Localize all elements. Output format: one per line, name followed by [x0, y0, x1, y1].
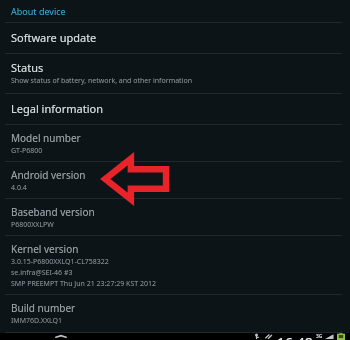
staticText: Show status of battery, network, and oth…: [11, 76, 193, 86]
button[interactable]: Software update: [0, 23, 350, 53]
staticText: Kernel version: [11, 242, 79, 256]
staticText: Legal information: [11, 101, 103, 116]
button[interactable]: Android version: [0, 162, 350, 198]
button[interactable]: Kernel version: [0, 236, 350, 294]
staticText: 3G: [316, 333, 323, 340]
staticText: Status: [11, 60, 44, 75]
staticText: se.infra@SEI-46 #3: [11, 268, 73, 278]
button[interactable]: Status icons: [252, 333, 345, 340]
button[interactable]: Legal information: [0, 94, 350, 124]
staticText: About device: [11, 5, 66, 17]
staticText: Software update: [11, 30, 97, 45]
staticText: Android version: [11, 168, 86, 182]
button[interactable]: Build number: [0, 295, 350, 332]
staticText: 3.0.15-P6800XXLQ1-CL758322: [11, 257, 109, 267]
staticText: Build number: [11, 301, 76, 315]
staticText: 16:48: [277, 333, 313, 340]
button[interactable]: Status: [0, 54, 350, 93]
staticText: P6800XXLPW: [11, 220, 54, 230]
staticText: Baseband version: [11, 205, 95, 219]
staticText: IMM76D.XXLQ1: [11, 316, 62, 326]
button[interactable]: Home: [48, 333, 74, 340]
button[interactable]: Baseband version: [0, 199, 350, 235]
staticText: GT-P6800: [11, 146, 43, 156]
staticText: 4.0.4: [11, 183, 27, 193]
button[interactable]: Model number: [0, 125, 350, 161]
staticText: Model number: [11, 131, 81, 145]
staticText: SMP PREEMPT Thu Jun 21 23:27:29 KST 2012: [11, 279, 156, 289]
